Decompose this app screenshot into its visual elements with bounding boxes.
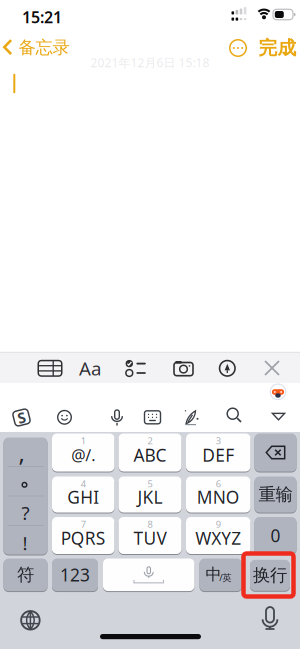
staticText: MNO: [197, 485, 240, 508]
staticText: ,: [18, 436, 24, 468]
button[interactable]: 3: [186, 433, 250, 472]
staticText: GHI: [67, 485, 99, 508]
staticText: 5: [147, 477, 152, 490]
staticText: 6: [216, 477, 221, 490]
staticText: 8: [147, 518, 152, 530]
button[interactable]: 换行: [250, 559, 290, 591]
staticText: ABC: [133, 443, 166, 466]
staticText: 9: [216, 518, 221, 530]
button[interactable]: 0: [254, 516, 296, 554]
button[interactable]: 9: [186, 516, 250, 554]
staticText: 3: [216, 434, 221, 447]
button[interactable]: 123: [52, 558, 98, 591]
staticText: ?: [21, 500, 29, 525]
button[interactable]: Next keyboard: [19, 609, 41, 631]
staticText: DEF: [202, 443, 234, 466]
button[interactable]: Space: [103, 558, 194, 591]
staticText: 7: [81, 518, 86, 530]
staticText: 完成: [258, 36, 296, 59]
button[interactable]: More: [227, 37, 249, 59]
staticText: 4: [81, 477, 86, 490]
staticText: JKL: [137, 485, 162, 508]
staticText: TUV: [133, 526, 166, 549]
staticText: 符: [17, 564, 34, 585]
button[interactable]: 2: [118, 433, 181, 472]
staticText: S: [17, 408, 25, 427]
button[interactable]: Text format: [75, 357, 105, 379]
button[interactable]: Hide toolbar: [272, 413, 286, 421]
staticText: PQRS: [61, 526, 106, 549]
button[interactable]: ,: [3, 438, 47, 466]
staticText: 123: [60, 563, 90, 586]
button[interactable]: !: [3, 526, 47, 554]
button[interactable]: 完成: [252, 36, 300, 60]
button[interactable]: 4: [52, 476, 114, 513]
button[interactable]: 7: [52, 516, 114, 554]
staticText: Aa: [79, 356, 101, 381]
button[interactable]: Voice input: [110, 409, 124, 426]
button[interactable]: Insert table: [35, 357, 65, 379]
button[interactable]: [3, 467, 47, 496]
button[interactable]: 中: [199, 558, 242, 591]
button[interactable]: Markup: [216, 357, 238, 379]
button[interactable]: Dismiss keyboard: [263, 359, 281, 377]
staticText: 15:21: [22, 6, 62, 28]
button[interactable]: Handwriting: [184, 409, 200, 425]
button[interactable]: 5: [118, 476, 181, 513]
staticText: 1: [81, 434, 86, 447]
button[interactable]: Emoji: [55, 408, 73, 426]
button[interactable]: Sogou: [10, 406, 32, 428]
staticText: 2021年12月6日 15:18: [90, 54, 209, 70]
button[interactable]: 重输: [254, 476, 296, 513]
button[interactable]: Keyboard layout: [143, 410, 161, 425]
button[interactable]: Search: [227, 408, 242, 423]
button[interactable]: Delete: [254, 433, 296, 472]
button[interactable]: 8: [118, 516, 181, 554]
staticText: WXYZ: [195, 526, 241, 549]
button[interactable]: Dictation: [261, 608, 279, 630]
staticText: @/.: [71, 444, 95, 466]
staticText: /英: [219, 571, 231, 584]
staticText: 中: [206, 564, 222, 584]
staticText: 0: [270, 524, 280, 547]
button[interactable]: Checklist: [124, 357, 150, 379]
button[interactable]: Insert photo: [169, 357, 197, 379]
staticText: 换行: [253, 565, 287, 586]
button[interactable]: ?: [3, 496, 47, 525]
staticText: 备忘录: [18, 37, 69, 58]
staticText: 重输: [258, 484, 292, 505]
button[interactable]: 符: [3, 558, 47, 591]
staticText: !: [22, 531, 27, 555]
button[interactable]: 备忘录: [1, 35, 71, 59]
button[interactable]: 1: [52, 433, 114, 472]
staticText: 2: [147, 434, 152, 447]
button[interactable]: 6: [186, 476, 250, 513]
